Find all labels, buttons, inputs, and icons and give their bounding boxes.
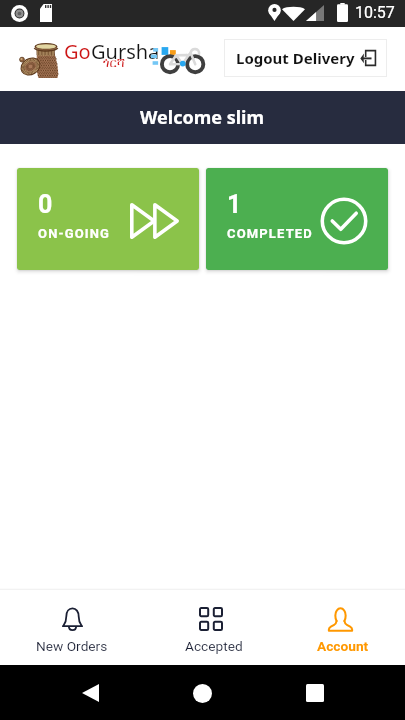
staticText: Logout Delivery [236, 48, 355, 68]
button[interactable]: Back [68, 671, 112, 715]
staticText: New Orders [36, 638, 108, 654]
button[interactable]: Accepted [147, 590, 281, 667]
button[interactable]: 0 [17, 168, 199, 270]
button[interactable]: Home [180, 671, 224, 715]
staticText: ON-GOING [38, 226, 111, 241]
staticText: Gursha [91, 38, 160, 65]
staticText: Account [317, 638, 369, 654]
button[interactable]: Recent apps [293, 671, 337, 715]
button[interactable]: Logout Delivery [225, 40, 386, 76]
button[interactable]: New Orders [5, 590, 139, 667]
staticText: Accepted [185, 638, 243, 654]
staticText: COMPLETED [227, 226, 313, 241]
staticText: Welcome slim [140, 105, 265, 130]
staticText: Go [64, 38, 91, 65]
button[interactable]: 1 [206, 168, 388, 270]
button[interactable]: Account [276, 590, 405, 667]
staticText: ጎርሻ [103, 57, 125, 70]
staticText: 10:57 [355, 3, 395, 22]
staticText: 0 [38, 190, 53, 219]
staticText: 1 [227, 190, 242, 219]
